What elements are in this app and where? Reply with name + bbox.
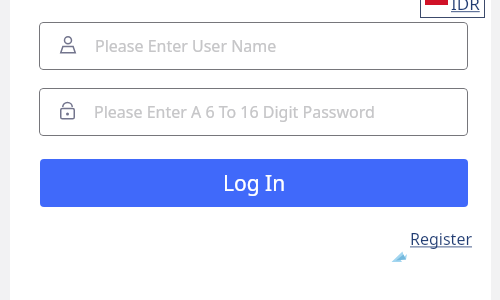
button[interactable]: Log In <box>40 159 468 207</box>
staticText: Please Enter A 6 To 16 Digit Password <box>94 101 375 123</box>
staticText: Please Enter User Name <box>95 35 277 57</box>
staticText: IDR <box>451 0 480 15</box>
staticText: Register <box>410 228 473 250</box>
button[interactable]: Select currency IDR <box>420 0 485 18</box>
button[interactable]: Please Enter User Name <box>39 22 468 70</box>
button[interactable]: Please Enter A 6 To 16 Digit Password <box>39 88 468 136</box>
staticText: Log In <box>223 169 286 198</box>
button[interactable]: Register <box>410 228 473 250</box>
